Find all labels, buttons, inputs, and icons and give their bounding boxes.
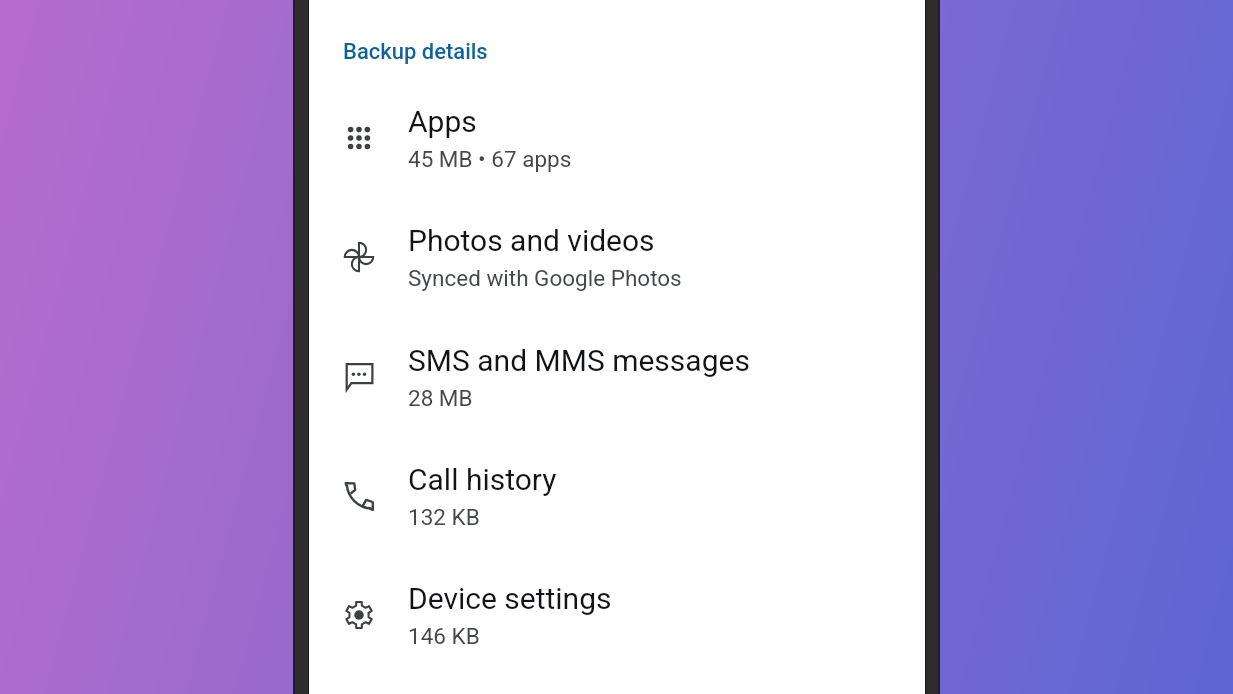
staticText: Device settings (408, 581, 612, 616)
staticText: 45 MB • 67 apps (408, 146, 572, 172)
staticText: 146 KB (408, 623, 480, 649)
staticText: Call history (408, 462, 557, 497)
staticText: 28 MB (408, 385, 473, 411)
staticText: Apps (408, 104, 477, 139)
button[interactable]: Call history (309, 436, 925, 555)
staticText: 132 KB (408, 504, 480, 530)
button[interactable]: Backup details (309, 26, 512, 77)
staticText: SMS and MMS messages (408, 343, 750, 378)
button[interactable]: Photos and videos (309, 197, 925, 316)
staticText: Synced with Google Photos (408, 265, 682, 291)
staticText: Backup details (343, 39, 488, 65)
button[interactable]: Device settings (309, 555, 925, 674)
staticText: Photos and videos (408, 223, 655, 258)
button[interactable]: SMS and MMS messages (309, 317, 925, 436)
button[interactable]: Apps (309, 78, 925, 197)
